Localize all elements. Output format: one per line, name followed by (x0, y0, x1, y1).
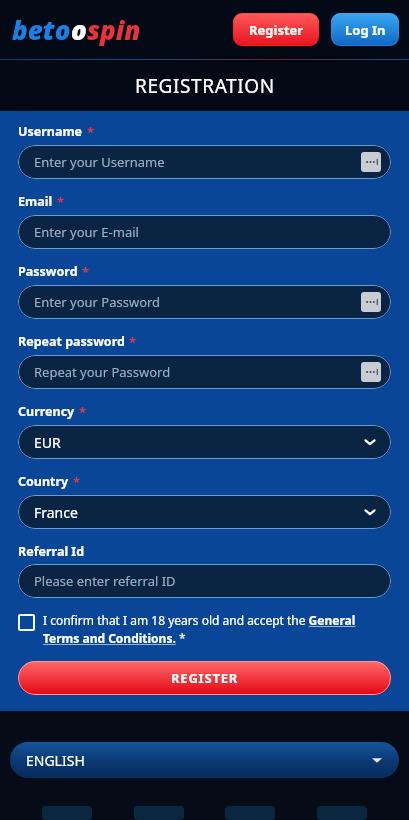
staticText: Username (18, 123, 83, 140)
staticText: REGISTRATION (135, 73, 275, 99)
button[interactable]: Enter your Username (18, 145, 391, 179)
staticText: Log In (345, 21, 386, 39)
staticText: Enter your Password (34, 293, 161, 311)
button[interactable]: Autofill (361, 292, 381, 312)
staticText: Register (249, 21, 304, 39)
button[interactable]: Partner logo (134, 806, 184, 820)
button[interactable]: REGISTER (18, 661, 391, 695)
button[interactable]: Repeat your Password (18, 355, 391, 389)
button[interactable]: Enter your Password (18, 285, 391, 319)
staticText: Please enter referral ID (34, 572, 176, 590)
staticText: I confirm that I am 18 years old and acc… (43, 612, 391, 647)
button[interactable]: Partner logo (42, 806, 92, 820)
staticText: ENGLISH (26, 751, 85, 770)
staticText: Password (18, 263, 78, 280)
staticText: France (34, 503, 78, 522)
button[interactable]: Register (233, 13, 319, 46)
staticText: EUR (34, 433, 61, 452)
button[interactable]: Confirm age checkbox (18, 612, 391, 647)
staticText: * (73, 473, 81, 491)
button[interactable]: ENGLISH (10, 742, 399, 778)
staticText: Repeat your Password (34, 363, 171, 381)
button[interactable]: Partner logo (317, 806, 367, 820)
button[interactable]: Partner logo (225, 806, 275, 820)
staticText: * (129, 333, 137, 351)
button[interactable]: Log In (331, 13, 399, 46)
staticText: Repeat password (18, 333, 125, 350)
staticText: * (57, 193, 65, 211)
staticText: Enter your E-mail (34, 223, 139, 241)
staticText: o (71, 12, 87, 47)
staticText: Currency (18, 403, 75, 420)
staticText: Country (18, 473, 69, 490)
button[interactable]: Please enter referral ID (18, 564, 391, 598)
staticText: * (82, 263, 90, 281)
button[interactable]: Confirm age checkbox (18, 614, 35, 631)
staticText: Enter your Username (34, 153, 165, 171)
staticText: beto (12, 12, 71, 47)
button[interactable]: Autofill (361, 362, 381, 382)
staticText: Referral Id (18, 543, 85, 560)
button[interactable]: France (18, 495, 391, 529)
button[interactable]: Enter your E-mail (18, 215, 391, 249)
staticText: REGISTER (171, 669, 239, 687)
staticText: * (87, 123, 95, 141)
staticText: * (79, 403, 87, 421)
staticText: spin (87, 12, 141, 47)
button[interactable]: Autofill (361, 152, 381, 172)
button[interactable]: EUR (18, 425, 391, 459)
staticText: Email (18, 193, 53, 210)
